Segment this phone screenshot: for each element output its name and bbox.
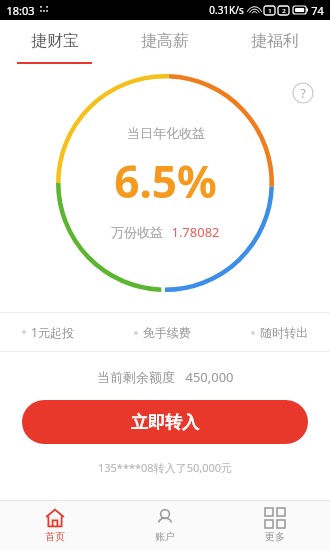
button[interactable]: 捷财宝 bbox=[0, 20, 110, 62]
staticText: 捷财宝 bbox=[31, 31, 79, 51]
button[interactable]: Help bbox=[292, 82, 314, 104]
button[interactable]: 首页 bbox=[0, 501, 110, 550]
staticText: 捷福利 bbox=[251, 31, 299, 51]
staticText: 首页 bbox=[45, 530, 65, 543]
button[interactable]: 账户 bbox=[110, 501, 220, 550]
staticText: 135****08转入了50,000元 bbox=[0, 460, 330, 475]
staticText: 当前剩余额度 bbox=[97, 369, 175, 385]
staticText: 捷高薪 bbox=[141, 31, 189, 51]
button[interactable]: 捷高薪 bbox=[110, 20, 220, 62]
staticText: 18:03 bbox=[6, 3, 35, 18]
button[interactable]: 更多 bbox=[220, 501, 330, 550]
staticText: 2 bbox=[282, 7, 286, 15]
staticText: 1 bbox=[268, 7, 272, 15]
staticText: 1.78082 bbox=[171, 223, 220, 241]
staticText: 6.5% bbox=[114, 151, 217, 211]
staticText: 免手续费 bbox=[143, 325, 191, 340]
staticText: 当日年化收益 bbox=[127, 125, 205, 141]
button[interactable]: 捷福利 bbox=[220, 20, 330, 62]
staticText: 账户 bbox=[155, 530, 175, 543]
staticText: 立即转入 bbox=[131, 412, 199, 433]
staticText: 450,000 bbox=[185, 368, 234, 386]
staticText: ? bbox=[300, 85, 306, 101]
staticText: 随时转出 bbox=[260, 325, 308, 340]
staticText: 0.31K/s bbox=[209, 3, 244, 17]
staticText: 74 bbox=[311, 3, 324, 18]
staticText: 更多 bbox=[265, 530, 285, 543]
button[interactable]: 立即转入 bbox=[22, 400, 308, 444]
staticText: 万份收益 bbox=[111, 224, 163, 240]
staticText: 1元起投 bbox=[31, 324, 74, 340]
